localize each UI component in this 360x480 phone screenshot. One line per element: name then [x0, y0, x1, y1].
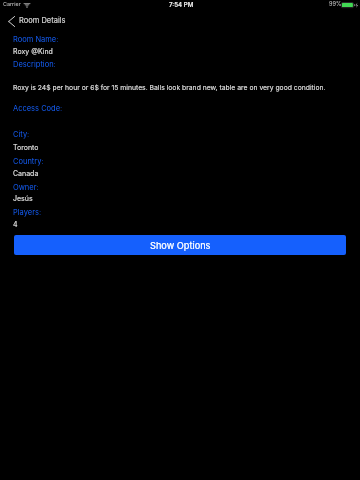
staticText: Room Name: [13, 35, 59, 44]
staticText: Description: [13, 60, 56, 69]
staticText: 99% [329, 1, 342, 8]
staticText: Owner: [13, 183, 39, 192]
staticText: Canada [13, 169, 39, 177]
staticText: City: [13, 130, 30, 139]
staticText: 4 [13, 220, 18, 228]
staticText: 7:54 PM [169, 1, 194, 9]
staticText: Toronto [13, 143, 39, 151]
staticText: Roxy is 24$ per hour or 6$ for 15 minute… [13, 83, 326, 91]
staticText: Roxy @Kind [13, 47, 53, 55]
button[interactable]: Show Options [14, 235, 346, 255]
staticText: Room Details [19, 16, 66, 25]
staticText: Carrier [3, 1, 21, 8]
staticText: Jesús [13, 194, 33, 202]
staticText: Show Options [150, 240, 211, 251]
staticText: Players: [13, 208, 42, 217]
staticText: Country: [13, 157, 44, 166]
button[interactable]: Back [4, 14, 72, 29]
staticText: Access Code: [13, 104, 63, 113]
